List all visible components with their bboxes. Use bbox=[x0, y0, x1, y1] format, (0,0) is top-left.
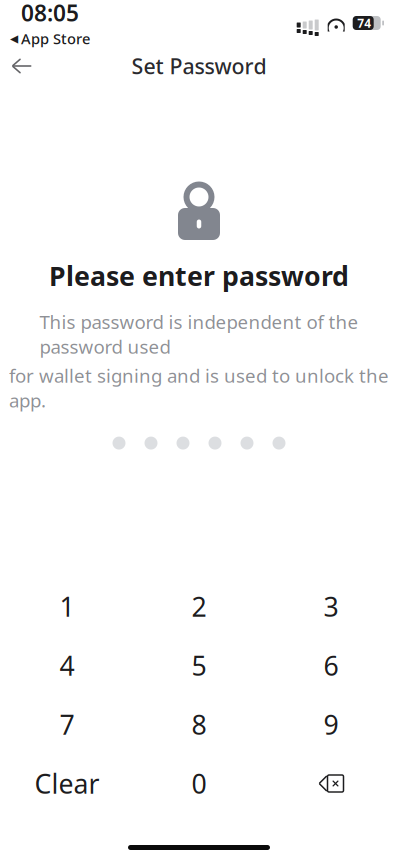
staticText: 74 bbox=[357, 15, 371, 31]
staticText: This password is independent of the pass… bbox=[39, 309, 358, 359]
staticText: Clear bbox=[34, 766, 99, 801]
staticText: Set Password bbox=[131, 52, 266, 80]
button[interactable]: Clear bbox=[1, 754, 133, 813]
staticText: 5 bbox=[191, 648, 206, 683]
button[interactable]: 4 bbox=[1, 636, 133, 695]
button[interactable]: 9 bbox=[265, 695, 397, 754]
button[interactable]: 5 bbox=[133, 636, 265, 695]
button[interactable]: 7 bbox=[1, 695, 133, 754]
button[interactable]: 2 bbox=[133, 577, 265, 636]
button[interactable]: 1 bbox=[1, 577, 133, 636]
button[interactable]: 8 bbox=[133, 695, 265, 754]
staticText: App Store bbox=[21, 29, 90, 48]
staticText: 0 bbox=[191, 766, 206, 801]
staticText: 08:05 bbox=[21, 0, 79, 28]
staticText: 8 bbox=[191, 707, 206, 742]
staticText: 3 bbox=[323, 589, 338, 624]
staticText: 6 bbox=[323, 648, 338, 683]
staticText: 1 bbox=[59, 589, 74, 624]
staticText: ◀ bbox=[10, 32, 18, 45]
staticText: Please enter password bbox=[49, 258, 349, 293]
button[interactable]: 6 bbox=[265, 636, 397, 695]
staticText: 2 bbox=[191, 589, 206, 624]
staticText: 4 bbox=[59, 648, 74, 683]
staticText: 7 bbox=[59, 707, 74, 742]
button[interactable]: Back bbox=[0, 46, 44, 86]
button[interactable]: 3 bbox=[265, 577, 397, 636]
button[interactable]: 0 bbox=[133, 754, 265, 813]
button[interactable]: Delete bbox=[265, 754, 397, 813]
staticText: for wallet signing and is used to unlock… bbox=[9, 363, 389, 413]
staticText: 9 bbox=[323, 707, 338, 742]
